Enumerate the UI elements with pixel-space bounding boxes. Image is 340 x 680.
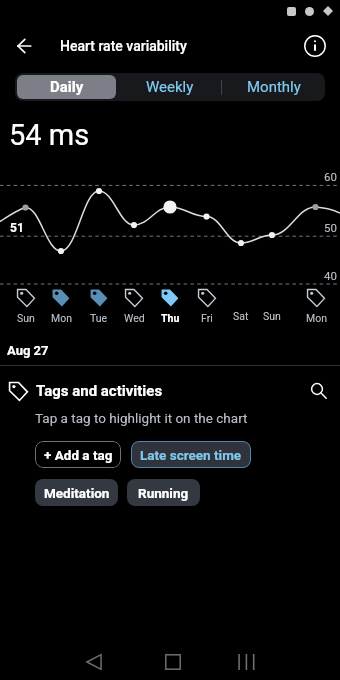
button[interactable]: Back [6,28,42,64]
staticText: 60 [324,170,337,183]
staticText: Tags and activities [36,382,163,400]
staticText: Sat [233,310,249,322]
staticText: Weekly [146,78,194,96]
staticText: Heart rate variability [60,38,187,54]
staticText: Tue [90,312,108,324]
staticText: Mon [51,312,72,324]
staticText: Sun [17,312,35,324]
button[interactable]: Late screen time [131,441,251,468]
button[interactable]: Monthly [222,73,325,101]
staticText: Wed [124,312,145,324]
staticText: Fri [201,312,213,324]
button[interactable]: + Add a tag [35,441,121,468]
button[interactable]: Meditation [35,479,118,506]
staticText: 54 ms [9,118,90,152]
button[interactable]: Weekly [118,73,221,101]
staticText: Running [138,485,189,501]
button[interactable]: Daily [17,75,116,99]
button[interactable]: Information [298,29,332,63]
staticText: Daily [50,78,84,96]
button[interactable]: Back [73,641,114,680]
staticText: 51 [10,221,24,235]
staticText: Tap a tag to highlight it on the chart [35,410,248,426]
staticText: 40 [324,269,337,282]
staticText: Aug 27 [7,343,49,358]
staticText: Late screen time [140,447,242,463]
staticText: Meditation [44,485,110,501]
staticText: Mon [306,312,327,324]
button[interactable]: Search [306,378,332,404]
staticText: + Add a tag [44,447,113,463]
staticText: Monthly [247,78,301,96]
staticText: 50 [324,221,337,234]
button[interactable]: Running [127,479,200,506]
button[interactable]: Home [152,641,193,680]
staticText: Sun [263,310,281,322]
button[interactable]: Recent apps [225,641,266,680]
staticText: Thu [161,312,180,324]
